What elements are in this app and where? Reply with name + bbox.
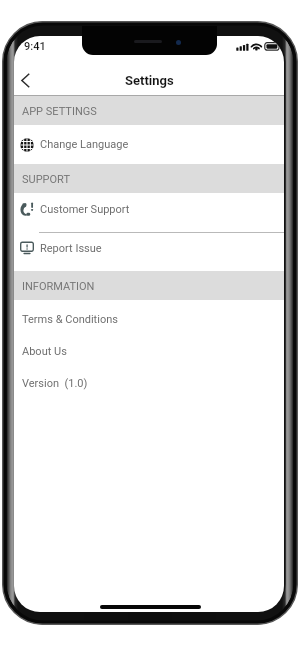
button[interactable]: Report Issue: [14, 232, 284, 271]
button[interactable]: Back: [14, 58, 50, 94]
button[interactable]: About Us: [14, 332, 284, 364]
staticText: 9:41: [24, 40, 46, 53]
button[interactable]: Customer Support: [14, 193, 284, 232]
staticText: Customer Support: [40, 203, 130, 216]
button[interactable]: Change Language: [14, 125, 284, 164]
staticText: Settings: [125, 73, 174, 88]
button[interactable]: Version (1.0): [14, 364, 284, 396]
staticText: APP SETTINGS: [22, 105, 97, 118]
staticText: Change Language: [40, 138, 129, 151]
button[interactable]: Terms & Conditions: [14, 300, 284, 332]
staticText: Version (1.0): [22, 377, 88, 390]
staticText: SUPPORT: [22, 173, 71, 186]
staticText: About Us: [22, 345, 67, 358]
staticText: Report Issue: [40, 242, 102, 255]
staticText: Terms & Conditions: [22, 313, 118, 326]
staticText: INFORMATION: [22, 280, 95, 293]
